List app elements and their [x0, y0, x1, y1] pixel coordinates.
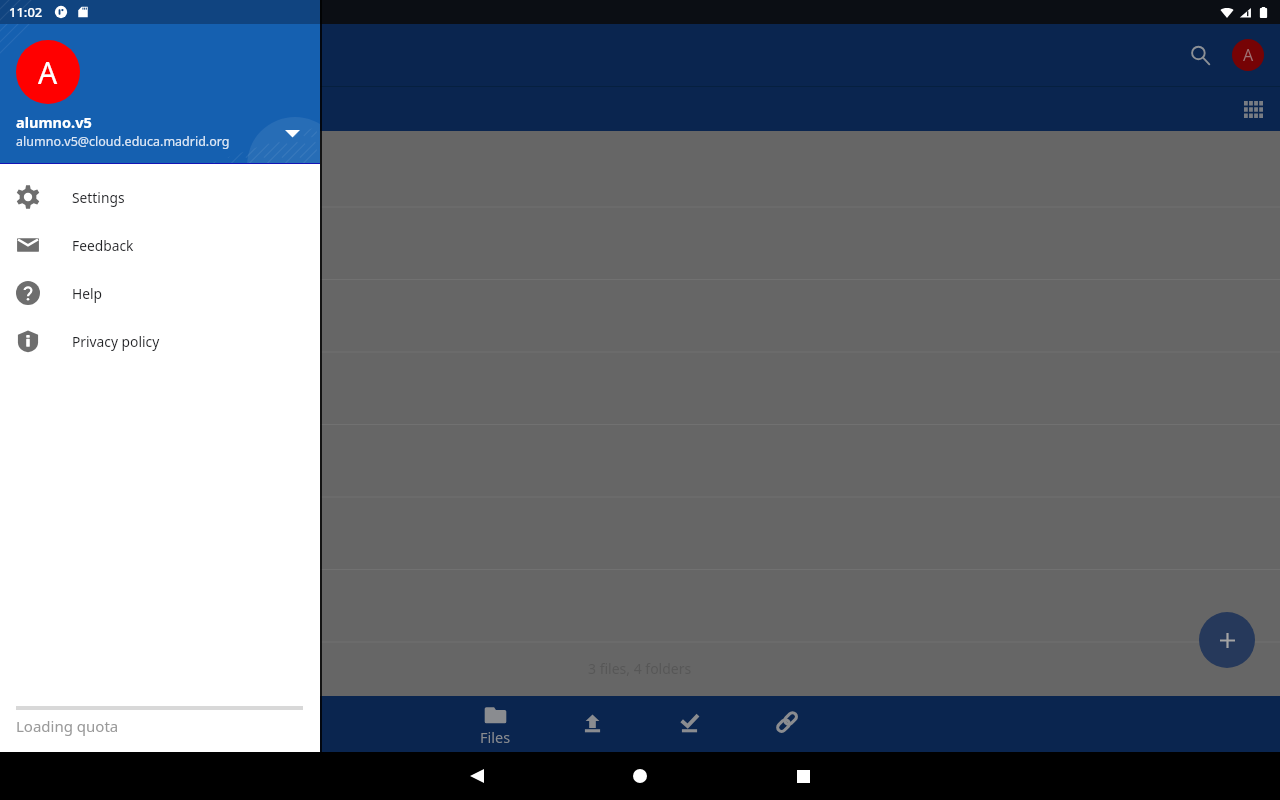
- staticText: A: [38, 52, 58, 93]
- button[interactable]: Add: [1199, 612, 1255, 668]
- button[interactable]: Back: [453, 752, 501, 800]
- staticText: Settings: [72, 188, 125, 207]
- staticText: Feedback: [72, 236, 134, 255]
- staticText: Loading quota: [16, 716, 119, 736]
- staticText: alumno.v5@cloud.educa.madrid.org: [16, 133, 230, 150]
- button[interactable]: Activity: [641, 696, 738, 752]
- button[interactable]: Privacy policy: [0, 317, 320, 365]
- button[interactable]: Home: [616, 752, 664, 800]
- staticText: 11:02: [9, 3, 43, 21]
- staticText: A: [1243, 44, 1254, 66]
- button[interactable]: Settings: [0, 173, 320, 221]
- button[interactable]: Shared: [738, 696, 835, 752]
- staticText: Privacy policy: [72, 332, 160, 351]
- staticText: Files: [480, 727, 511, 747]
- button[interactable]: Switch account: [278, 119, 306, 147]
- button[interactable]: Search: [1178, 33, 1222, 77]
- staticText: Help: [72, 284, 103, 303]
- staticText: alumno.v5: [16, 112, 92, 132]
- button[interactable]: Account: [1232, 39, 1264, 71]
- staticText: 3 files, 4 folders: [588, 659, 692, 678]
- button[interactable]: Feedback: [0, 221, 320, 269]
- button[interactable]: Files: [447, 696, 544, 752]
- button[interactable]: Uploads: [544, 696, 641, 752]
- button[interactable]: Recents: [779, 752, 827, 800]
- button[interactable]: Switch view: [1234, 90, 1272, 128]
- button[interactable]: Help: [0, 269, 320, 317]
